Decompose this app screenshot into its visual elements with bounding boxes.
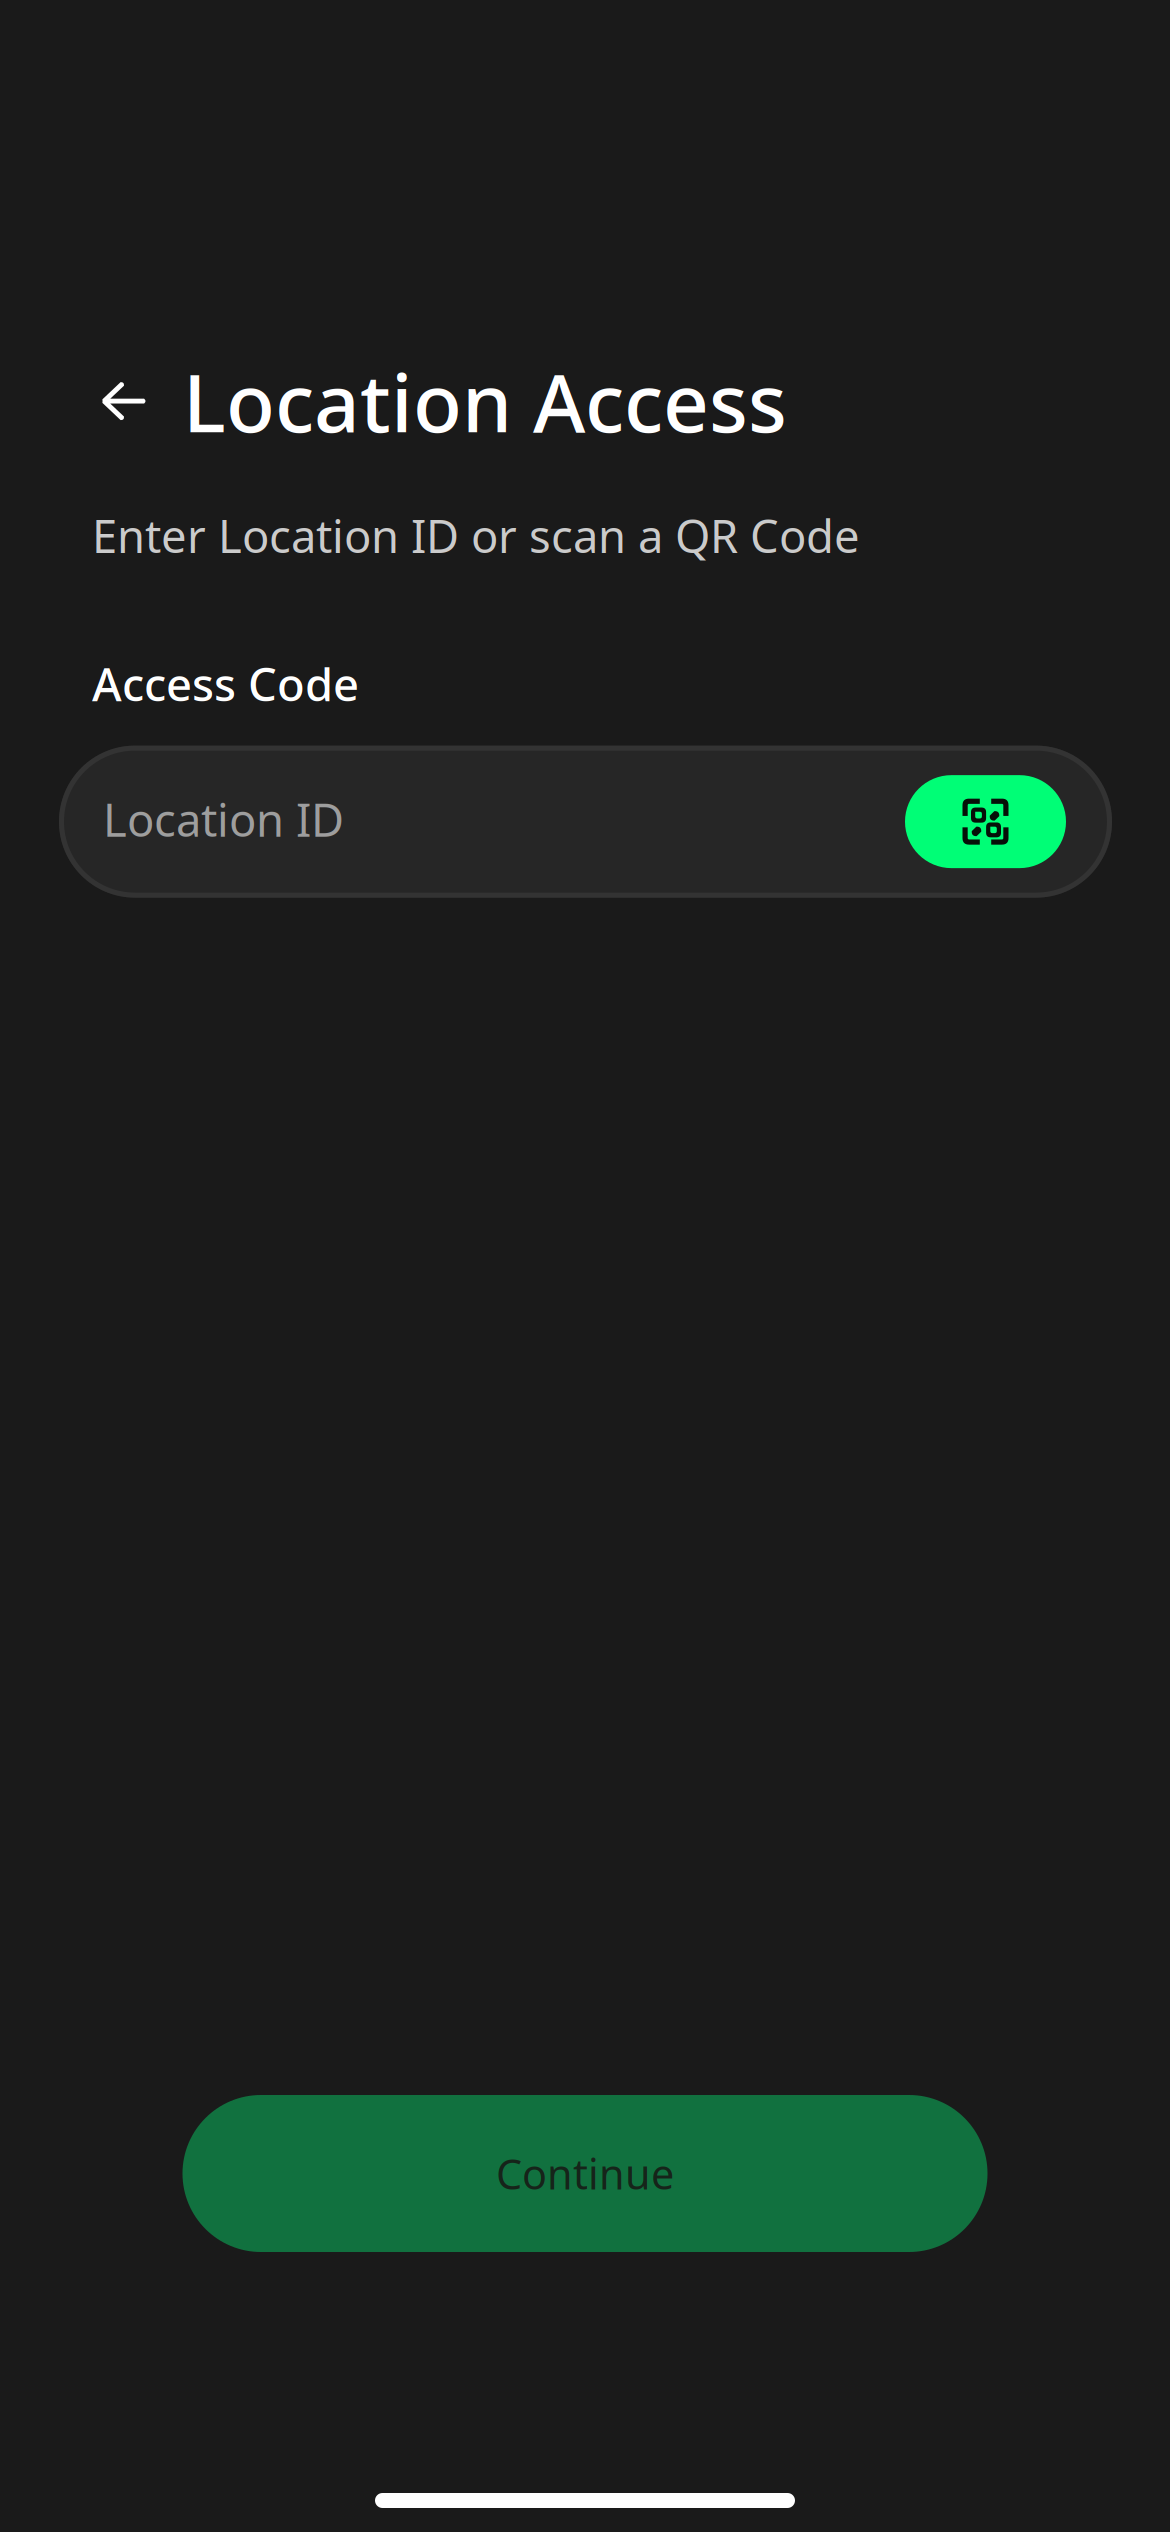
staticText: Access Code	[92, 653, 359, 714]
staticText: Continue	[496, 2146, 674, 2201]
button[interactable]: Back	[102, 363, 145, 439]
button[interactable]: Continue	[182, 2095, 987, 2252]
staticText: Enter Location ID or scan a QR Code	[92, 505, 860, 565]
staticText: Location Access	[183, 348, 787, 454]
button[interactable]: Scan QR code	[905, 775, 1066, 868]
staticText: Location ID	[103, 789, 344, 849]
